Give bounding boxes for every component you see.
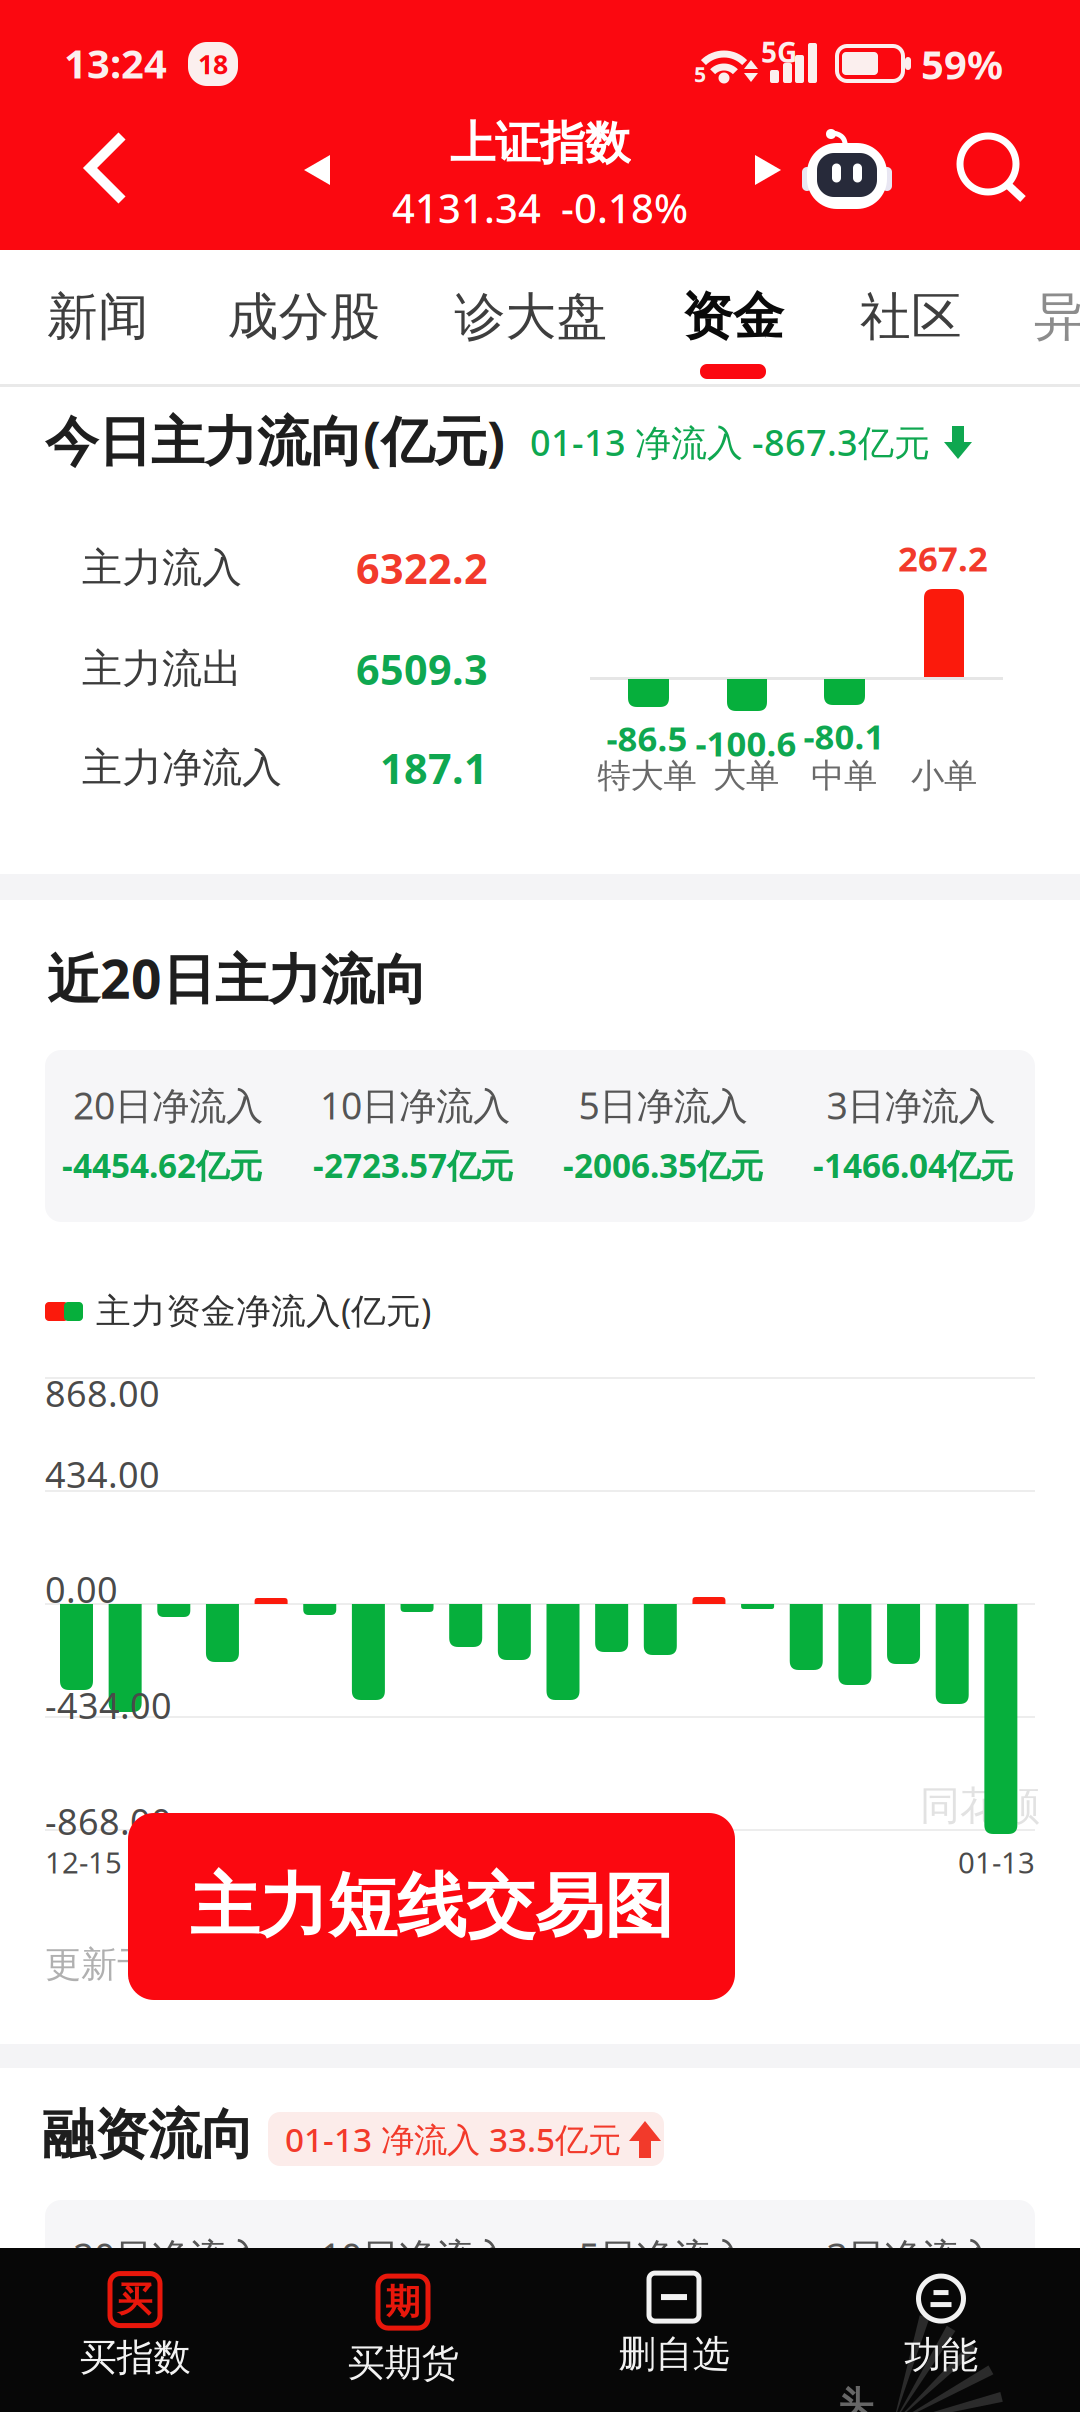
staticText: 01-13 净流入 33.5亿元 [285,2117,621,2161]
button[interactable]: 资金 [668,276,798,358]
staticText: 成分股 [227,286,380,348]
button[interactable]: Search [957,135,1027,203]
staticText: 买期货 [347,2340,458,2386]
button[interactable]: 期 [347,2276,458,2386]
button[interactable]: 功能 [904,2276,978,2378]
staticText: 功能 [904,2332,978,2378]
button[interactable]: 诊大盘 [440,276,621,358]
button[interactable]: Next index [751,155,785,185]
staticText: 新闻 [47,286,149,348]
staticText: 3日净流入 [826,1080,995,1130]
button[interactable]: 买 [79,2274,190,2380]
staticText: 诊大盘 [454,286,607,348]
staticText: -100.6 [695,720,796,766]
staticText: -80.1 [803,713,884,759]
staticText: 5G [761,33,797,71]
staticText: 上证指数 [450,116,630,171]
staticText: 更新于 01-13 15:04:36 [45,1939,413,1987]
staticText: 特大单 [597,755,696,796]
staticText: 头 [838,2383,873,2412]
staticText: 主力流出 [82,644,242,693]
staticText: -2006.35亿元 [563,1143,763,1187]
button[interactable]: Previous index [300,155,334,185]
button[interactable]: 社区 [846,276,976,358]
staticText: 434.00 [45,1450,160,1498]
staticText: 中单 [811,755,877,796]
staticText: 10日净流入 [320,2231,510,2281]
staticText: 今日主力流向(亿元) [45,405,505,475]
staticText: 59% [921,37,1003,90]
button[interactable]: Back [66,118,146,218]
staticText: 01-13 净流入 -867.3亿元 [530,418,930,466]
staticText: -868.00 [45,1797,172,1845]
staticText: 6322.2 [356,541,488,595]
staticText: 6509.3 [356,642,488,696]
staticText: 买 [117,2278,152,2321]
staticText: 20日净流入 [73,1080,263,1130]
staticText: 01-13 [958,1842,1035,1881]
button[interactable]: 成分股 [213,276,394,358]
staticText: 小单 [911,755,977,796]
staticText: 买指数 [79,2335,190,2380]
staticText: 267.2 [898,535,988,581]
button[interactable]: AI assistant [805,131,889,209]
staticText: 868.00 [45,1369,160,1417]
staticText: 期 [385,2281,420,2323]
staticText: 主力短线交易图 [190,1864,673,1949]
staticText: 主力净流入 [82,743,282,792]
staticText: 12-15 [45,1842,122,1881]
staticText: -434.00 [45,1681,172,1729]
staticText: 13:24 [64,36,167,89]
staticText: 资金 [682,286,784,348]
staticText: 5 [694,60,706,88]
staticText: 近20日主力流向 [47,943,427,1013]
staticText: -2723.57亿元 [313,1143,513,1187]
button[interactable]: 新闻 [33,276,163,358]
staticText: 异动 [1034,286,1080,348]
staticText: -4454.62亿元 [62,1143,262,1187]
staticText: 10日净流入 [320,1080,510,1130]
staticText: 同花顺 [920,1781,1040,1830]
staticText: 社区 [860,286,962,348]
staticText: -86.5 [606,715,687,761]
staticText: 5日净流入 [578,1080,747,1130]
staticText: 删自选 [618,2331,729,2377]
staticText: 3日净流入 [826,2231,995,2281]
staticText: 5日净流入 [578,2231,747,2281]
staticText: 0.00 [45,1565,118,1613]
staticText: 主力流入 [82,543,242,592]
button[interactable]: 主力短线交易图 [128,1813,735,2000]
staticText: 18 [198,46,228,82]
staticText: 20日净流入 [73,2231,263,2281]
button[interactable]: 上证指数 [392,116,688,234]
button[interactable]: 异动 [1020,276,1080,358]
button[interactable]: 删自选 [618,2273,729,2377]
staticText: -1466.04亿元 [813,1143,1013,1187]
staticText: 4131.34 -0.18% [392,181,688,234]
staticText: 187.1 [380,741,488,795]
staticText: 融资流向 [42,2102,254,2168]
staticText: 大单 [713,755,779,796]
staticText: 主力资金净流入(亿元) [96,1287,431,1333]
